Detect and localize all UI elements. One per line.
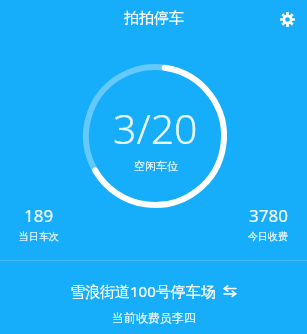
staticText: 空闲车位 — [134, 159, 178, 173]
staticText: 当前收费员李四 — [112, 310, 196, 325]
staticText: 3780 — [249, 204, 288, 227]
staticText: 189 — [24, 204, 54, 227]
staticText: 今日收费 — [248, 230, 288, 243]
staticText: 拍拍停车 — [124, 9, 184, 28]
staticText: 3/20 — [113, 100, 198, 156]
other: Switch parking lot — [223, 284, 237, 298]
staticText: 雪浪街道100号停车场 — [70, 281, 216, 301]
button[interactable]: 雪浪街道100号停车场 — [60, 278, 247, 304]
button[interactable]: Settings — [274, 6, 300, 32]
staticText: 当日车次 — [19, 230, 59, 243]
button[interactable]: 189 — [0, 202, 78, 245]
button[interactable]: 3780 — [229, 202, 307, 245]
